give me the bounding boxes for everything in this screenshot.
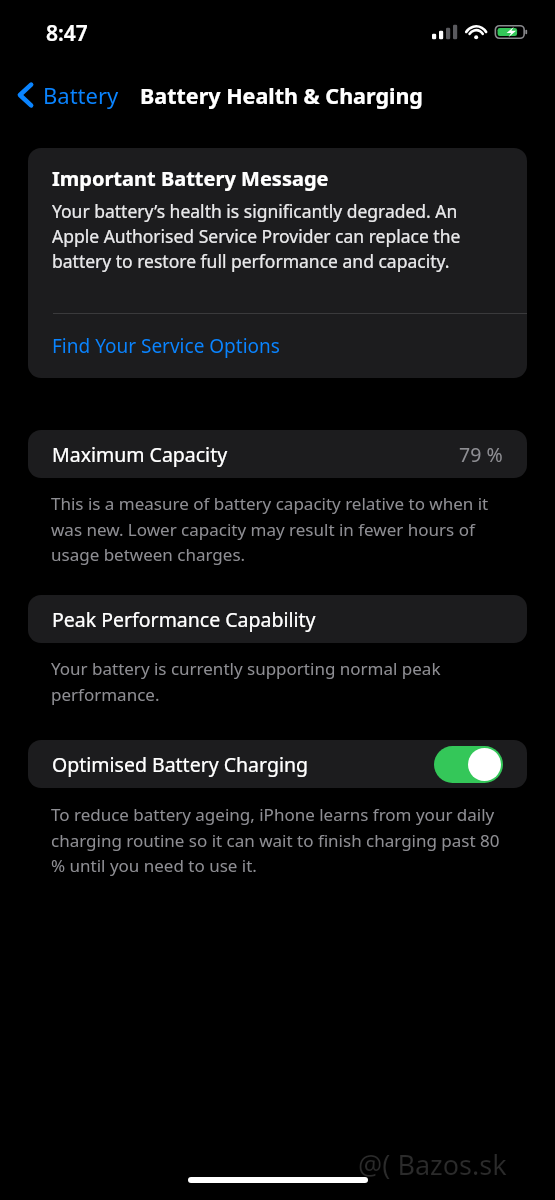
staticText: To reduce battery ageing, iPhone learns …: [51, 803, 511, 877]
staticText: Your battery’s health is significantly d…: [52, 199, 507, 273]
button[interactable]: Battery: [10, 75, 127, 115]
staticText: Maximum Capacity: [52, 441, 228, 468]
button[interactable]: Find Your Service Options: [28, 314, 527, 378]
button[interactable]: Maximum Capacity: [28, 430, 527, 478]
staticText: 79 %: [459, 441, 503, 468]
button[interactable]: Optimised Battery Charging: [28, 740, 527, 788]
staticText: Optimised Battery Charging: [52, 751, 308, 778]
staticText: Find Your Service Options: [52, 333, 280, 359]
staticText: Battery Health & Charging: [140, 81, 423, 110]
staticText: Your battery is currently supporting nor…: [51, 657, 511, 706]
staticText: Battery: [43, 80, 119, 110]
button[interactable]: Peak Performance Capability: [28, 595, 527, 643]
staticText: Important Battery Message: [52, 165, 329, 192]
button[interactable]: Optimised Battery Charging toggle, on: [434, 746, 503, 783]
staticText: Peak Performance Capability: [52, 606, 316, 633]
staticText: This is a measure of battery capacity re…: [51, 492, 511, 566]
staticText: 8:47: [46, 19, 88, 48]
staticText: @( Bazos.sk: [358, 1146, 507, 1183]
